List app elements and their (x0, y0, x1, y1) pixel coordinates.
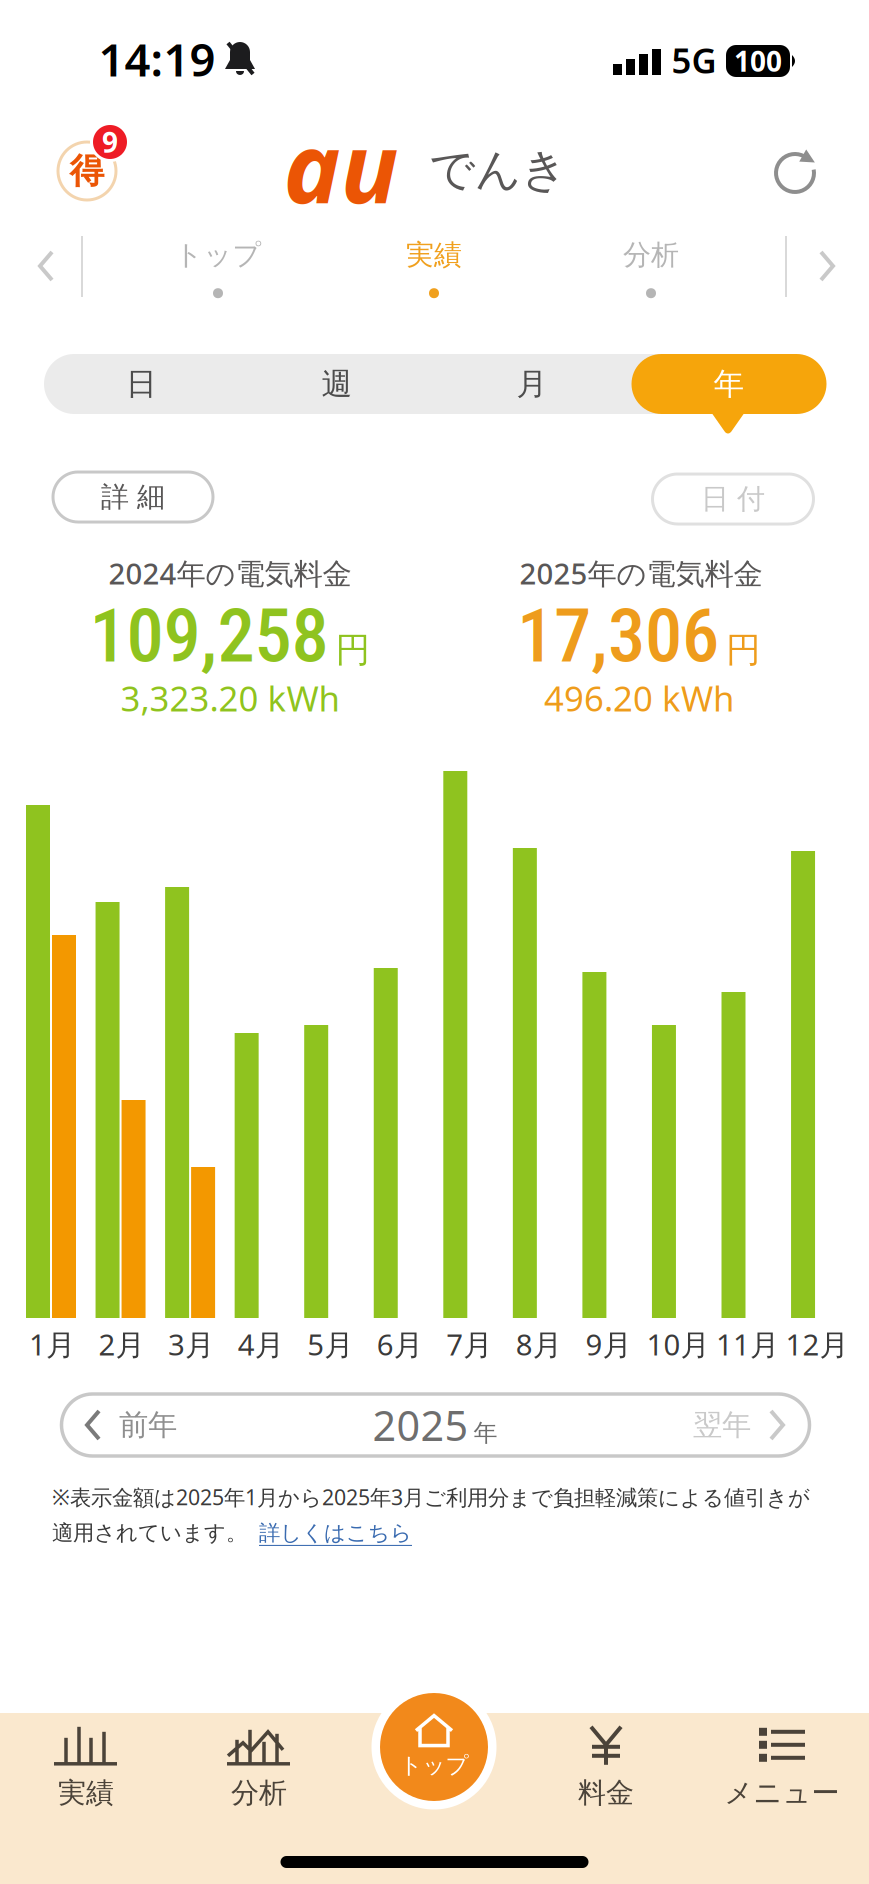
staticText: 週 (321, 365, 352, 403)
staticText: 2月 (98, 1324, 144, 1363)
button[interactable]: 週 (239, 354, 434, 414)
staticText: 9月 (585, 1324, 631, 1363)
staticText: 実績 (58, 1776, 114, 1810)
staticText: 6月 (377, 1324, 423, 1363)
button[interactable]: 料金 (526, 1718, 686, 1818)
staticText: 円 (726, 629, 761, 671)
button[interactable]: 前のページ (26, 242, 66, 290)
staticText: 年 (473, 1418, 497, 1448)
button[interactable]: 前年 (53, 1393, 203, 1457)
button[interactable]: 年 (631, 354, 826, 414)
button[interactable]: 更新 (765, 142, 825, 202)
staticText: 2025 (372, 1398, 468, 1452)
staticText: au (283, 102, 398, 230)
staticText: 2025年の電気料金 (519, 553, 762, 592)
staticText: メニュー (724, 1776, 839, 1810)
staticText: 100 (734, 42, 782, 80)
staticText: 7月 (446, 1324, 492, 1363)
staticText: 適用されています。 (52, 1520, 247, 1546)
staticText: 8月 (516, 1324, 562, 1363)
button[interactable]: 分析 (576, 235, 726, 301)
staticText: 月 (517, 365, 548, 403)
staticText: 10月 (646, 1324, 709, 1363)
staticText: でんき (429, 142, 567, 198)
staticText: 翌年 (693, 1407, 751, 1443)
button[interactable]: 実績 (6, 1718, 166, 1818)
staticText: 5月 (307, 1324, 353, 1363)
staticText: 14:19 (98, 29, 215, 89)
staticText: 実績 (406, 238, 462, 272)
staticText: 前年 (119, 1407, 177, 1443)
button[interactable]: 詳 細 (53, 472, 213, 522)
staticText: 料金 (578, 1776, 634, 1810)
staticText: 1月 (29, 1324, 75, 1363)
staticText: 12月 (785, 1324, 848, 1363)
staticText: 4月 (238, 1324, 284, 1363)
staticText: 年 (713, 365, 744, 403)
button[interactable]: 翌年 (667, 1393, 817, 1457)
staticText: 11月 (716, 1324, 779, 1363)
staticText: 詳しくはこちら (259, 1520, 412, 1546)
staticText: 日 付 (701, 482, 765, 516)
staticText: 2024年の電気料金 (108, 553, 351, 592)
staticText: 109,258 (89, 592, 328, 680)
staticText: 詳 細 (101, 480, 165, 514)
staticText: 5G (671, 37, 716, 83)
button[interactable]: メニュー (702, 1718, 862, 1818)
staticText: ※表示金額は2025年1月から2025年3月ご利用分まで負担軽減策による値引きが (52, 1483, 810, 1511)
staticText: 得 (69, 150, 104, 192)
staticText: 日 (126, 365, 157, 403)
staticText: トップ (399, 1752, 468, 1779)
staticText: 496.20 kWh (544, 675, 734, 721)
staticText: 分析 (231, 1776, 287, 1810)
button[interactable]: 月 (435, 354, 630, 414)
button[interactable]: 日 付 (652, 474, 813, 524)
staticText: 3月 (168, 1324, 214, 1363)
staticText: 17,306 (517, 592, 719, 680)
button[interactable]: 実績 (359, 235, 509, 301)
button[interactable]: おトク情報 (55, 139, 119, 203)
staticText: 3,323.20 kWh (120, 675, 339, 721)
button[interactable]: 日 (44, 354, 239, 414)
staticText: 円 (335, 629, 370, 671)
button[interactable]: 詳しくはこちら (259, 1520, 412, 1546)
button[interactable]: 分析 (179, 1718, 339, 1818)
button[interactable]: トップ (378, 1691, 490, 1803)
staticText: 分析 (623, 238, 679, 272)
button[interactable]: 次のページ (807, 242, 847, 290)
button[interactable]: トップ (143, 235, 293, 301)
staticText: トップ (174, 238, 261, 272)
staticText: 9 (102, 123, 118, 161)
